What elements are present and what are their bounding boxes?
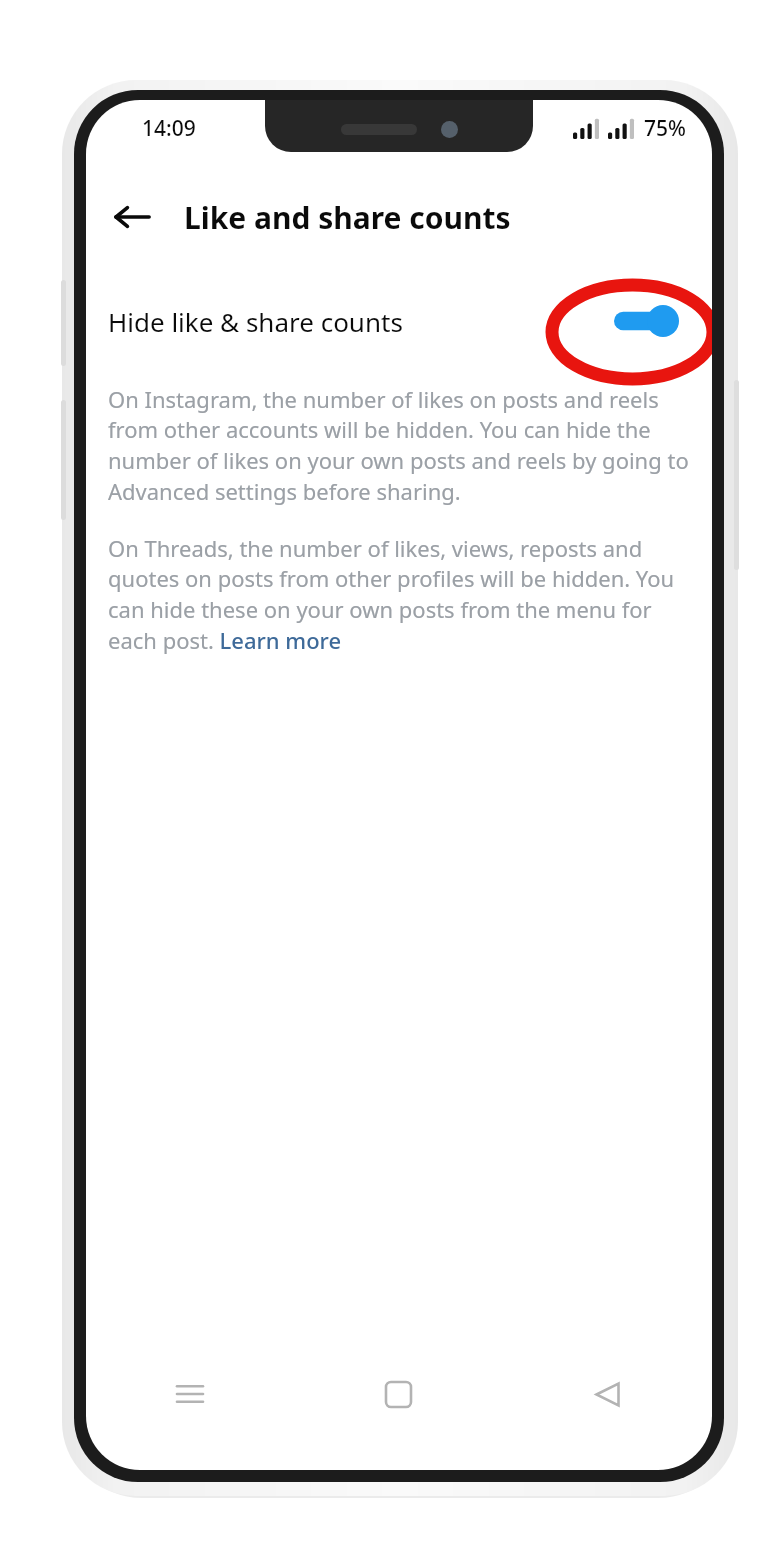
button[interactable]: Home (294, 1356, 503, 1432)
staticText: Hide like & share counts (108, 304, 403, 339)
button[interactable]: Hide like & share counts (86, 292, 712, 350)
staticText: 75% (644, 114, 686, 143)
staticText: On Instagram, the number of likes on pos… (108, 384, 690, 507)
button[interactable]: Recent apps (86, 1356, 294, 1432)
button[interactable]: Back (104, 189, 160, 245)
button[interactable]: Hide like and share counts toggle (614, 301, 684, 341)
button[interactable]: On Threads, the number of likes, views, … (108, 533, 690, 656)
staticText: Like and share counts (184, 197, 511, 238)
button[interactable]: Back (503, 1356, 712, 1432)
staticText: 14:09 (142, 114, 196, 143)
